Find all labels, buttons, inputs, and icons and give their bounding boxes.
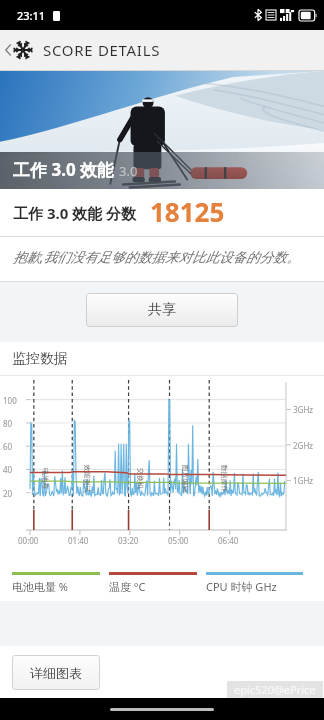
staticText: 03:20 [118,535,139,546]
staticText: 工作 3.0 效能 分数 [13,203,137,223]
button[interactable]: CPU 时钟 GHz [206,572,303,594]
staticText: epic520@ePrice [234,682,316,697]
button[interactable]: 电池电量 % [12,572,100,594]
staticText: 2GHz [293,440,314,451]
staticText: 工作 3.0 效能 [13,158,115,181]
staticText: 20 [3,488,13,499]
staticText: 详细图表 [30,665,82,681]
staticText: 监控数据 [12,350,68,368]
staticText: 40 [3,464,13,475]
staticText: 图片编辑 [180,464,189,492]
staticText: 00:00 [18,535,39,546]
staticText: 电池电量 % [12,579,69,594]
staticText: 1GHz [293,475,314,486]
staticText: 18125 [150,194,225,229]
staticText: 06:40 [218,535,239,546]
staticText: 05:00 [168,535,189,546]
staticText: CPU 时钟 GHz [206,579,277,594]
staticText: 100 [3,395,17,406]
staticText: 23:11 [17,8,46,23]
staticText: 3.0 [119,162,138,180]
staticText: 共享 [148,301,176,319]
staticText: 交换机 [136,468,145,489]
button[interactable]: 工作 3.0 效能 [0,71,324,189]
staticText: 01:40 [68,535,89,546]
staticText: SCORE DETAILS [43,40,161,60]
button[interactable]: 温度 °C [109,572,197,594]
button[interactable]: Back [5,30,32,70]
staticText: 80 [3,418,13,429]
staticText: 数据操作 [219,464,228,492]
staticText: 60 [3,441,13,452]
staticText: 3GHz [293,404,314,415]
staticText: 电池寿 [41,468,50,489]
button[interactable]: 共享 [86,293,238,327]
staticText: 效能测试 [82,464,91,492]
staticText: 温度 °C [109,579,146,594]
button[interactable]: 详细图表 [12,655,100,690]
staticText: 抱歉,我们没有足够的数据来对比此设备的分数。 [13,248,300,266]
